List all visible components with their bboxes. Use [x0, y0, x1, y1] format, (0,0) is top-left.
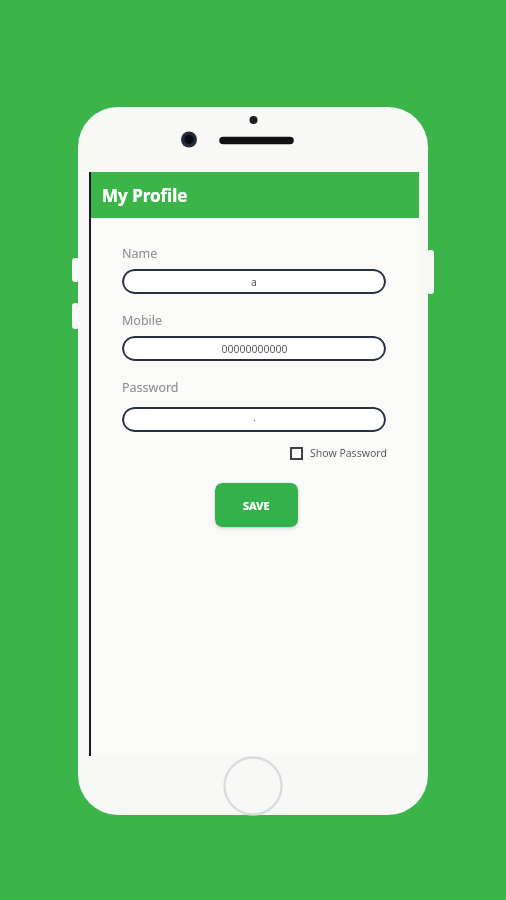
button[interactable]: SAVE	[215, 483, 298, 527]
staticText: Password	[122, 379, 179, 396]
staticText: a	[251, 275, 257, 289]
button[interactable]: Name field	[122, 269, 386, 294]
staticText: SAVE	[243, 498, 270, 513]
button[interactable]: Mobile field	[122, 336, 386, 361]
button[interactable]: Password field	[122, 407, 386, 432]
button[interactable]: Show Password	[287, 443, 390, 463]
staticText: ·	[253, 413, 256, 427]
button[interactable]: My Profile	[89, 172, 419, 218]
staticText: 00000000000	[221, 342, 288, 356]
staticText: Name	[122, 245, 158, 262]
staticText: Show Password	[310, 446, 387, 460]
staticText: My Profile	[102, 184, 188, 207]
staticText: Mobile	[122, 312, 163, 329]
